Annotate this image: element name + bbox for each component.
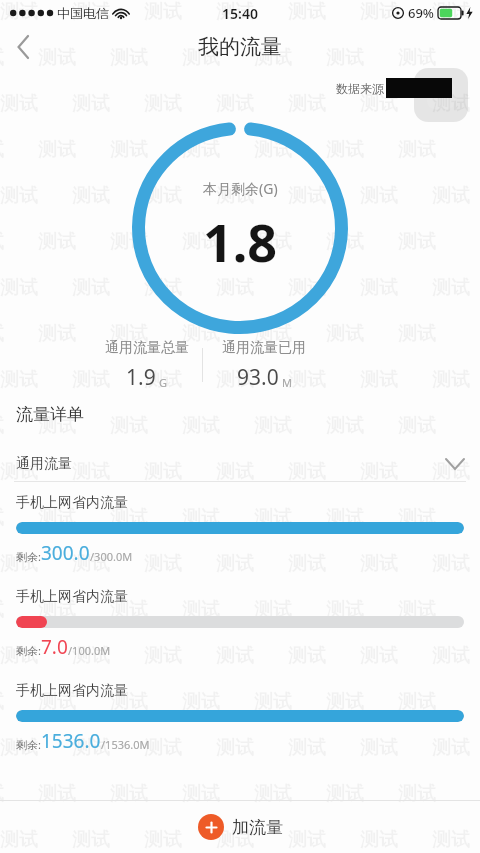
staticText: 测试 [360,276,398,300]
staticText: 测试 [326,138,364,162]
staticText: 测试 [432,0,470,24]
staticText: 测试 [144,184,182,208]
staticText: 测试 [144,368,182,392]
staticText: 测试 [288,184,326,208]
staticText: 测试 [216,828,254,852]
staticText: 测试 [288,828,326,852]
staticText: 测试 [432,552,470,576]
staticText: 测试 [360,736,398,760]
button[interactable]: Back [0,26,46,68]
staticText: 手机上网省内流量 [16,682,128,700]
staticText: 测试 [0,230,4,254]
staticText: 测试 [398,322,436,346]
staticText: 测试 [38,46,76,70]
staticText: 测试 [182,598,220,622]
staticText: 中国电信 [57,5,109,21]
staticText: 测试 [432,276,470,300]
staticText: 测试 [288,368,326,392]
staticText: 我的流量 [198,34,282,60]
staticText: 测试 [216,368,254,392]
staticText: 1.9 [126,363,156,392]
staticText: 测试 [110,46,148,70]
staticText: 测试 [326,782,364,806]
staticText: 测试 [254,690,292,714]
staticText: 测试 [288,736,326,760]
staticText: 69% [408,4,434,22]
staticText: 测试 [144,0,182,24]
staticText: 测试 [254,782,292,806]
staticText: 本月剩余(G) [203,179,278,198]
staticText: 测试 [110,230,148,254]
staticText: 测试 [0,690,4,714]
staticText: 测试 [254,230,292,254]
staticText: 测试 [72,92,110,116]
staticText: 测试 [288,276,326,300]
staticText: 测试 [110,138,148,162]
staticText: 测试 [182,322,220,346]
staticText: 测试 [360,828,398,852]
staticText: 测试 [0,736,38,760]
staticText: 测试 [326,414,364,438]
staticText: 测试 [182,230,220,254]
staticText: 测试 [72,184,110,208]
staticText: 测试 [72,368,110,392]
staticText: 测试 [360,644,398,668]
staticText: 测试 [72,828,110,852]
staticText: 测试 [432,92,470,116]
staticText: 测试 [432,368,470,392]
staticText: 测试 [110,690,148,714]
button[interactable]: 加流量 [184,808,297,846]
staticText: 测试 [432,460,470,484]
staticText: 测试 [38,598,76,622]
staticText: 测试 [326,322,364,346]
staticText: 测试 [38,690,76,714]
staticText: 测试 [0,644,38,668]
staticText: 测试 [216,184,254,208]
staticText: 7.0 [41,634,68,660]
staticText: 测试 [144,92,182,116]
staticText: 测试 [254,46,292,70]
staticText: 测试 [72,460,110,484]
staticText: 测试 [254,414,292,438]
staticText: 测试 [326,506,364,530]
staticText: 测试 [0,322,4,346]
staticText: 测试 [0,46,4,70]
staticText: 测试 [144,644,182,668]
staticText: 测试 [144,276,182,300]
staticText: 测试 [398,782,436,806]
staticText: 测试 [326,690,364,714]
staticText: 测试 [72,276,110,300]
staticText: 测试 [110,506,148,530]
staticText: 测试 [38,322,76,346]
staticText: 1536.0 [41,728,101,754]
staticText: 测试 [38,138,76,162]
button[interactable]: 通用流量 [0,447,480,481]
staticText: 测试 [0,552,38,576]
staticText: 测试 [432,828,470,852]
staticText: 测试 [0,138,4,162]
staticText: 剩余: [16,549,41,564]
staticText: 测试 [326,46,364,70]
staticText: 测试 [0,414,4,438]
staticText: /300.0M [90,549,133,564]
staticText: 测试 [72,552,110,576]
staticText: M [282,375,292,390]
staticText: 测试 [182,506,220,530]
staticText: 剩余: [16,737,41,752]
staticText: 测试 [182,782,220,806]
staticText: 测试 [326,230,364,254]
staticText: 测试 [216,0,254,24]
staticText: 测试 [0,506,4,530]
staticText: 测试 [72,0,110,24]
staticText: 测试 [360,0,398,24]
staticText: 测试 [398,138,436,162]
staticText: 测试 [182,138,220,162]
staticText: 测试 [0,184,38,208]
staticText: 测试 [398,506,436,530]
staticText: 测试 [432,736,470,760]
staticText: 测试 [0,828,38,852]
staticText: 手机上网省内流量 [16,588,128,606]
staticText: /100.0M [68,643,111,658]
staticText: 测试 [398,414,436,438]
staticText: 通用流量总量 [105,339,189,357]
